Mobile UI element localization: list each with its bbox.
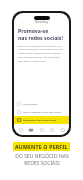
button[interactable]: Compartilhar (14, 100, 69, 108)
staticText: nas redes sociais! (18, 34, 63, 41)
staticText: Promova-se (18, 27, 49, 34)
staticText: Impulsionar nas redes sociais (23, 119, 57, 122)
staticText: Veja como sua empresa se faz ao seu clie… (18, 44, 65, 62)
button[interactable]: Clients (38, 126, 46, 134)
button[interactable]: Profile (48, 126, 56, 134)
staticText: AUMENTE O PERFIL (15, 143, 68, 150)
staticText: Compartilhar (23, 103, 38, 106)
button[interactable]: Impulsionar nas redes sociais (14, 116, 69, 124)
staticText: Marketing (35, 20, 48, 24)
staticText: REDES SOCIAIS (24, 160, 60, 167)
staticText: Mostrar agenda no seu perfil social (23, 111, 61, 114)
button[interactable]: Mostrar agenda no seu perfil social (14, 108, 69, 116)
staticText: DO SEU NEGÓCIO NAS (15, 153, 69, 160)
button[interactable]: More (59, 126, 67, 134)
button[interactable]: Home (17, 126, 25, 134)
button[interactable]: Agenda (27, 126, 35, 134)
